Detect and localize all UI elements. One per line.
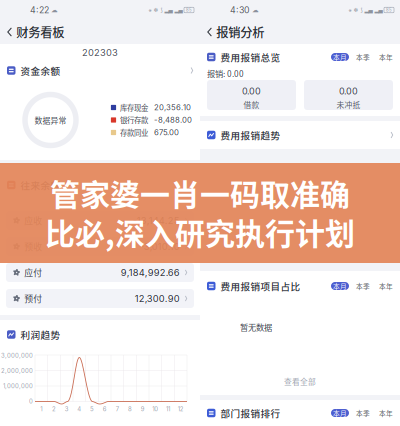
- button[interactable]: 本季: [356, 53, 370, 61]
- staticText: 存款同业: [120, 127, 148, 138]
- staticText: 预收: [24, 240, 42, 253]
- staticText: -3,010.10: [140, 241, 180, 252]
- staticText: 4: [77, 405, 81, 413]
- button[interactable]: 本季: [356, 282, 370, 290]
- staticText: 4:22: [30, 5, 49, 15]
- staticText: 9,184,992.66: [121, 267, 180, 278]
- staticText: 675.00: [154, 128, 179, 137]
- staticText: 3,000,000: [1, 352, 33, 359]
- button[interactable]: 查看全部: [200, 374, 400, 389]
- button[interactable]: 应付: [6, 263, 194, 282]
- staticText: 预付: [24, 292, 42, 305]
- button[interactable]: 本年: [379, 53, 393, 61]
- staticText: 8: [128, 405, 132, 413]
- button[interactable]: 预收: [6, 237, 194, 256]
- staticText: 5: [90, 405, 94, 413]
- staticText: 本年: [379, 408, 393, 418]
- staticText: 利润趋势: [20, 327, 60, 341]
- staticText: 12,300.90: [135, 293, 180, 304]
- staticText: 11: [166, 405, 170, 413]
- button[interactable]: 预付: [6, 289, 194, 308]
- staticText: -13,144.25: [133, 215, 180, 226]
- staticText: 7: [116, 405, 119, 413]
- staticText: 应付: [24, 266, 42, 279]
- button[interactable]: 本年: [379, 409, 393, 417]
- staticText: -8,488.00: [154, 115, 192, 125]
- staticText: 0: [29, 398, 33, 405]
- staticText: ☁: [252, 6, 259, 14]
- button[interactable]: Back to 报销分析: [200, 20, 400, 44]
- staticText: 本年: [379, 52, 393, 62]
- staticText: 85: [186, 7, 192, 13]
- staticText: 10: [152, 405, 158, 413]
- staticText: 6: [103, 405, 107, 413]
- staticText: 报销分析: [216, 23, 264, 41]
- staticText: 本季: [356, 52, 370, 62]
- staticText: 查看全部: [284, 376, 316, 387]
- staticText: 比必,深入研究执行计划: [45, 210, 355, 253]
- staticText: 1: [40, 405, 42, 413]
- staticText: 报销: 0.00: [207, 67, 244, 79]
- staticText: 银行存款: [120, 115, 148, 125]
- staticText: 0.00: [242, 86, 261, 97]
- staticText: 暂无数据: [240, 321, 272, 333]
- staticText: 85: [386, 7, 392, 13]
- staticText: 本季: [356, 281, 370, 291]
- staticText: 费用报销趋势: [220, 128, 280, 142]
- staticText: 本月: [333, 281, 347, 291]
- staticText: 管家婆一肖一码取准确: [50, 171, 350, 214]
- staticText: 2,000,000: [1, 367, 33, 374]
- staticText: 本月: [333, 52, 347, 62]
- button[interactable]: 本季: [356, 409, 370, 417]
- button[interactable]: 本月: [331, 409, 349, 417]
- staticText: 费用报销总览: [220, 50, 280, 64]
- staticText: 3: [65, 405, 69, 413]
- button[interactable]: 本年: [379, 282, 393, 290]
- staticText: ⚹ ✻ ⟆ ▂▄ ▂▄: [148, 7, 182, 13]
- staticText: 应收: [24, 214, 42, 227]
- staticText: 1,000,000: [3, 382, 33, 390]
- staticText: 库存现金: [120, 102, 148, 113]
- staticText: 202303: [82, 47, 118, 58]
- staticText: 20,356.10: [154, 103, 191, 112]
- staticText: 资金余额: [20, 63, 60, 77]
- staticText: 12: [178, 405, 184, 413]
- button[interactable]: 本月: [331, 282, 349, 290]
- staticText: 本年: [379, 281, 393, 291]
- staticText: 借款: [243, 99, 259, 110]
- button[interactable]: 本月: [331, 53, 349, 61]
- staticText: 0.00: [339, 86, 358, 97]
- button[interactable]: 应收: [6, 211, 194, 230]
- staticText: 9: [141, 405, 145, 413]
- staticText: 本季: [356, 408, 370, 418]
- staticText: 费用报销项目占比: [220, 279, 300, 293]
- staticText: 2: [52, 405, 56, 413]
- staticText: 财务看板: [16, 23, 64, 41]
- staticText: 本月: [333, 408, 347, 418]
- staticText: 4:30: [230, 5, 250, 15]
- button[interactable]: 费用报销趋势: [200, 121, 400, 149]
- staticText: 未冲抵: [336, 99, 360, 110]
- button[interactable]: Back to 财务看板: [0, 20, 200, 44]
- staticText: 数据异常: [34, 114, 66, 126]
- staticText: 往来余额: [20, 178, 60, 192]
- staticText: ⚹ ✻ ⟆ ▂▄ ▂▄: [348, 7, 382, 13]
- staticText: 部门报销排行: [220, 406, 280, 420]
- staticText: ☁: [51, 6, 58, 14]
